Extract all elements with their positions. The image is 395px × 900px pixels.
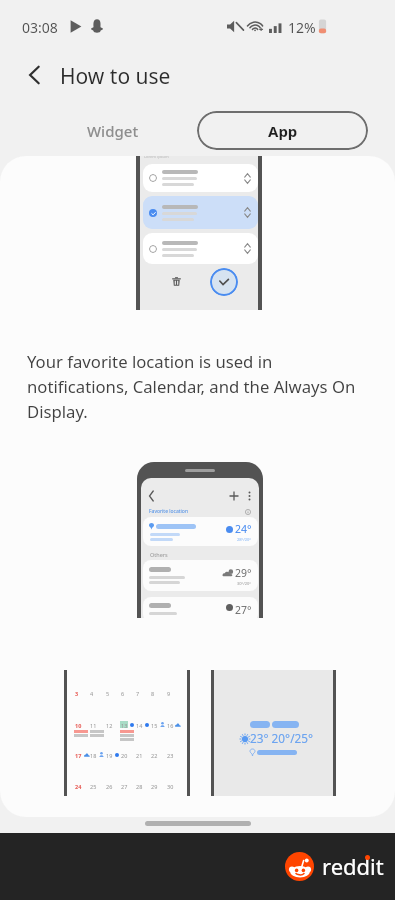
staticText: 14 <box>136 722 143 729</box>
staticText: reddit <box>322 851 384 881</box>
staticText: 12% <box>288 18 316 37</box>
staticText: App <box>268 121 298 141</box>
staticText: 12 <box>106 722 113 729</box>
staticText: 20 <box>121 752 128 759</box>
staticText: 18 <box>90 752 97 759</box>
staticText: How to use <box>60 62 171 91</box>
button[interactable]: Back <box>17 58 51 92</box>
staticText: 11 <box>90 722 97 729</box>
staticText: 10 <box>75 722 82 729</box>
button[interactable] <box>143 196 258 229</box>
button[interactable] <box>143 233 258 264</box>
staticText: 19 <box>106 752 113 759</box>
staticText: 25 <box>90 783 97 790</box>
staticText: 22 <box>151 752 158 759</box>
staticText: 23° 20°/25° <box>250 730 314 746</box>
button[interactable]: Delete <box>172 277 181 286</box>
staticText: Lorem ipsum <box>144 156 169 159</box>
staticText: 27° <box>235 603 252 617</box>
staticText: 17 <box>75 752 82 759</box>
staticText: 3 <box>75 690 79 697</box>
staticText: 21 <box>136 752 143 759</box>
staticText: 15 <box>151 722 158 729</box>
staticText: 5 <box>106 690 110 697</box>
staticText: Others <box>150 551 168 558</box>
staticText: 16 <box>167 722 174 729</box>
staticText: 28°/20° <box>237 537 252 542</box>
staticText: 4 <box>90 690 94 697</box>
staticText: Favorite location <box>149 508 188 515</box>
staticText: 24 <box>75 783 82 790</box>
button[interactable]: Widget <box>42 111 184 150</box>
button[interactable]: App <box>197 111 368 150</box>
staticText: 8 <box>151 690 155 697</box>
staticText: 26 <box>106 783 113 790</box>
staticText: 23 <box>167 752 174 759</box>
staticText: Your favorite location is used in notifi… <box>27 350 367 423</box>
button[interactable]: reddit <box>285 851 384 881</box>
staticText: 30°/20° <box>237 581 252 586</box>
staticText: 13 <box>121 722 128 729</box>
staticText: 9 <box>167 690 171 697</box>
staticText: 28 <box>136 783 143 790</box>
staticText: 27 <box>121 783 128 790</box>
staticText: 03:08 <box>22 18 58 37</box>
button[interactable]: Confirm <box>210 268 238 296</box>
staticText: 29 <box>151 783 158 790</box>
staticText: 29° <box>235 566 252 580</box>
staticText: 30 <box>167 783 174 790</box>
staticText: 6 <box>121 690 125 697</box>
staticText: 24° <box>235 522 252 536</box>
staticText: Widget <box>87 121 139 141</box>
staticText: 7 <box>136 690 140 697</box>
button[interactable] <box>143 164 258 192</box>
